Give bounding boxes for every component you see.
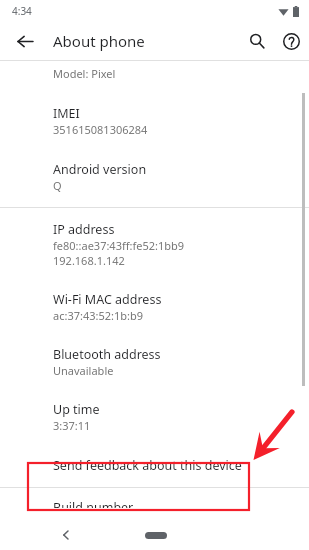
staticText: 351615081306284	[53, 122, 148, 137]
button[interactable]: Send feedback about this device	[0, 445, 309, 487]
button[interactable]: Android version	[0, 149, 309, 207]
button[interactable]: Search	[240, 24, 274, 58]
button[interactable]: Help	[275, 24, 309, 58]
staticText: Q	[53, 178, 62, 193]
staticText: Build number	[53, 499, 134, 508]
button[interactable]: IP address	[0, 208, 309, 280]
button[interactable]: Back	[52, 521, 80, 549]
staticText: IP address	[53, 221, 115, 238]
button[interactable]: Home	[136, 526, 176, 544]
staticText: About phone	[53, 31, 145, 51]
staticText: Send feedback about this device	[53, 457, 242, 474]
staticText: 3:37:11	[53, 418, 91, 433]
staticText: 4:34	[12, 4, 32, 18]
staticText: IMEI	[53, 105, 80, 122]
button[interactable]: Model: Pixel	[0, 61, 309, 97]
button[interactable]: Bluetooth address	[0, 335, 309, 390]
staticText: fe80::ae37:43ff:fe52:1bb9	[53, 238, 185, 253]
button[interactable]: Up time	[0, 390, 309, 445]
button[interactable]: Back	[9, 25, 41, 57]
staticText: Android version	[53, 161, 147, 178]
button[interactable]: Wi-Fi MAC address	[0, 280, 309, 335]
staticText: Unavailable	[53, 363, 114, 378]
staticText: Up time	[53, 401, 100, 418]
staticText: ac:37:43:52:1b:b9	[53, 308, 144, 323]
staticText: Model: Pixel	[53, 66, 116, 81]
staticText: Bluetooth address	[53, 346, 161, 363]
staticText: 192.168.1.142	[53, 253, 125, 268]
staticText: Wi-Fi MAC address	[53, 291, 162, 308]
button[interactable]: Build number	[0, 488, 309, 519]
button[interactable]: IMEI	[0, 97, 309, 149]
